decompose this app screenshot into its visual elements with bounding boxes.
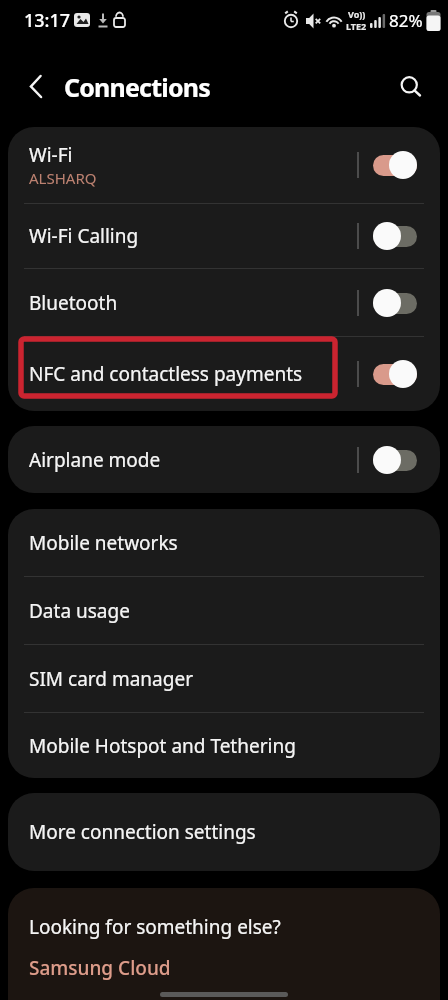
- staticText: Vo)): [348, 8, 366, 20]
- staticText: 13:17: [24, 8, 71, 33]
- staticText: Connections: [64, 70, 210, 104]
- button[interactable]: [373, 222, 417, 250]
- button[interactable]: Airplane mode: [8, 426, 440, 493]
- button[interactable]: Mobile networks: [8, 509, 440, 576]
- staticText: Wi-Fi: [29, 142, 73, 168]
- button[interactable]: Wi-Fi: [8, 127, 440, 203]
- staticText: More connection settings: [29, 819, 256, 845]
- button[interactable]: [30, 76, 42, 97]
- button[interactable]: More connection settings: [8, 793, 440, 871]
- staticText: SIM card manager: [29, 666, 193, 692]
- button[interactable]: [400, 76, 422, 98]
- staticText: ALSHARQ: [29, 168, 97, 188]
- button[interactable]: SIM card manager: [8, 645, 440, 712]
- staticText: Data usage: [29, 598, 130, 624]
- button[interactable]: [373, 360, 417, 388]
- staticText: Mobile networks: [29, 530, 178, 556]
- button[interactable]: Bluetooth: [8, 269, 440, 336]
- staticText: Wi-Fi Calling: [29, 223, 139, 249]
- button[interactable]: Data usage: [8, 577, 440, 644]
- button[interactable]: Mobile Hotspot and Tethering: [8, 713, 440, 778]
- staticText: Looking for something else?: [29, 914, 281, 940]
- staticText: Samsung Cloud: [29, 955, 171, 981]
- button[interactable]: [373, 289, 417, 317]
- staticText: Mobile Hotspot and Tethering: [29, 733, 296, 759]
- button[interactable]: NFC and contactless payments: [8, 337, 440, 411]
- staticText: 82%: [389, 9, 423, 32]
- button[interactable]: [373, 446, 417, 474]
- staticText: NFC and contactless payments: [29, 361, 303, 387]
- staticText: Airplane mode: [29, 447, 161, 473]
- staticText: LTE2: [346, 20, 367, 32]
- button[interactable]: Wi-Fi Calling: [8, 204, 440, 268]
- staticText: Bluetooth: [29, 290, 118, 316]
- button[interactable]: [373, 151, 417, 179]
- button[interactable]: Looking for something else?: [8, 888, 440, 1000]
